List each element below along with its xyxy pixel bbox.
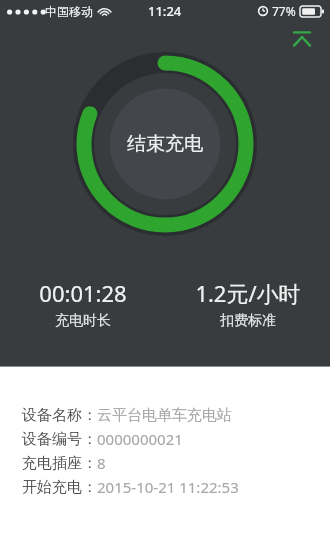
button[interactable]: 结束充电	[110, 89, 220, 199]
staticText: 开始充电：	[22, 478, 97, 497]
staticText: 云平台电单车充电站	[97, 406, 232, 425]
button[interactable]: 开始充电：	[22, 475, 330, 499]
staticText: 扣费标准	[220, 312, 276, 330]
button[interactable]: 充电插座：	[22, 451, 330, 475]
staticText: 11:24	[148, 2, 182, 20]
staticText: 77%	[272, 3, 296, 19]
button[interactable]: Collapse	[288, 24, 316, 52]
staticText: 设备名称：	[22, 406, 97, 425]
staticText: 设备编号：	[22, 430, 97, 449]
staticText: 0000000021	[97, 429, 183, 449]
staticText: 2015-10-21 11:22:53	[97, 477, 239, 497]
button[interactable]: 1.2元/小时	[165, 278, 330, 330]
staticText: 充电插座：	[22, 454, 97, 473]
staticText: 1.2元/小时	[195, 278, 301, 308]
staticText: 结束充电	[127, 132, 203, 156]
button[interactable]: 设备名称：	[22, 403, 330, 427]
staticText: 00:01:28	[39, 278, 127, 308]
staticText: 中国移动	[45, 4, 93, 19]
button[interactable]: 设备编号：	[22, 427, 330, 451]
staticText: 8	[97, 453, 106, 473]
staticText: 充电时长	[55, 312, 111, 330]
button[interactable]: 00:01:28	[0, 278, 165, 330]
